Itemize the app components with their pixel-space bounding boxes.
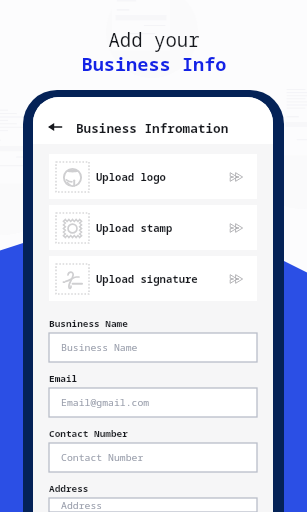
staticText: Upload signature xyxy=(96,272,198,286)
button[interactable]: Email@gmail.com xyxy=(49,388,257,417)
staticText: Business Infromation xyxy=(76,119,229,136)
button[interactable]: Address xyxy=(49,498,257,512)
staticText: Contact Number xyxy=(49,427,128,440)
button[interactable]: Business Name xyxy=(49,333,257,362)
button[interactable]: Contact Number xyxy=(49,443,257,472)
staticText: Address xyxy=(49,482,89,495)
button[interactable]: Upload stamp xyxy=(49,205,257,250)
staticText: Contact Number xyxy=(61,451,144,464)
staticText: Busniness Name xyxy=(49,317,128,330)
staticText: Business Info xyxy=(81,51,227,76)
staticText: Add your xyxy=(108,27,200,53)
staticText: Upload stamp xyxy=(96,221,173,235)
staticText: Email@gmail.com xyxy=(61,396,150,409)
staticText: Email xyxy=(49,372,78,385)
staticText: Business Name xyxy=(61,341,138,354)
button[interactable]: Upload logo xyxy=(49,154,257,199)
button[interactable]: Back xyxy=(45,117,65,137)
button[interactable]: Upload signature xyxy=(49,256,257,301)
staticText: Address xyxy=(61,499,103,512)
staticText: Upload logo xyxy=(96,170,166,184)
